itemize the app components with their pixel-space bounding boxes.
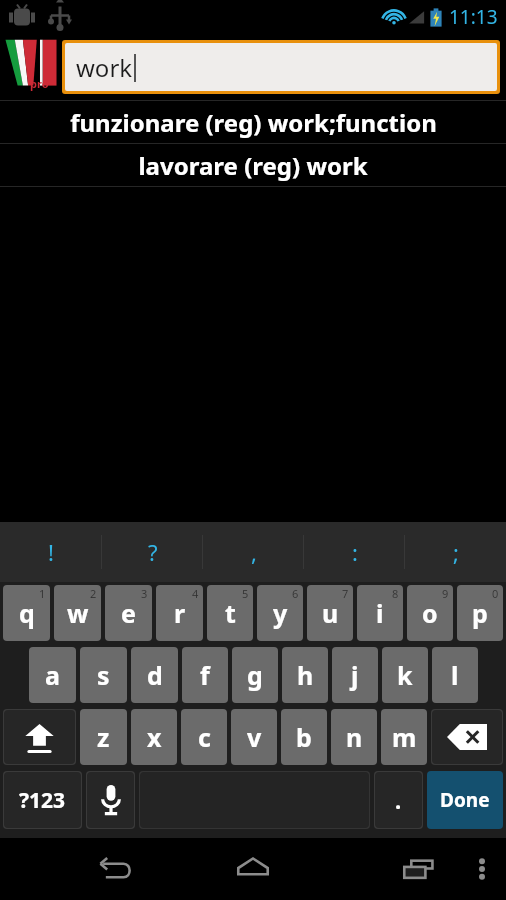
staticText: w bbox=[67, 596, 89, 630]
button[interactable]: ? bbox=[102, 522, 203, 582]
button[interactable]: e bbox=[105, 585, 152, 641]
staticText: e bbox=[121, 596, 136, 630]
staticText: g bbox=[247, 658, 263, 692]
button[interactable]: : bbox=[304, 522, 405, 582]
button[interactable]: App icon bbox=[0, 33, 62, 100]
button[interactable]: q bbox=[3, 585, 50, 641]
button[interactable]: , bbox=[203, 522, 304, 582]
button[interactable]: c bbox=[181, 709, 227, 765]
button[interactable]: . bbox=[375, 772, 422, 828]
staticText: p bbox=[472, 596, 488, 630]
staticText: ? bbox=[148, 537, 158, 567]
staticText: 8 bbox=[392, 586, 399, 601]
button[interactable]: x bbox=[131, 709, 177, 765]
button[interactable]: o bbox=[407, 585, 453, 641]
staticText: pro bbox=[30, 76, 49, 91]
staticText: o bbox=[422, 596, 438, 630]
staticText: f bbox=[200, 658, 210, 692]
staticText: s bbox=[97, 658, 110, 692]
button[interactable]: Recent apps bbox=[390, 840, 448, 898]
staticText: 0 bbox=[492, 586, 499, 601]
button[interactable]: h bbox=[282, 647, 328, 703]
staticText: h bbox=[297, 658, 314, 692]
staticText: Done bbox=[440, 787, 490, 813]
staticText: ! bbox=[48, 537, 54, 567]
staticText: ; bbox=[453, 537, 459, 567]
staticText: : bbox=[352, 537, 358, 567]
staticText: 6 bbox=[292, 586, 299, 601]
button[interactable]: u bbox=[307, 585, 353, 641]
staticText: d bbox=[147, 658, 163, 692]
staticText: 3 bbox=[141, 586, 148, 601]
button[interactable]: d bbox=[131, 647, 178, 703]
staticText: 4 bbox=[192, 586, 199, 601]
staticText: z bbox=[97, 720, 110, 754]
button[interactable]: ! bbox=[0, 522, 102, 582]
button[interactable]: w bbox=[54, 585, 101, 641]
button[interactable]: funzionare (reg) work;function bbox=[0, 101, 506, 143]
staticText: q bbox=[19, 596, 35, 630]
button[interactable]: p bbox=[457, 585, 503, 641]
button[interactable]: f bbox=[182, 647, 228, 703]
staticText: , bbox=[251, 537, 257, 567]
button[interactable]: Home bbox=[224, 840, 282, 898]
staticText: 7 bbox=[342, 586, 349, 601]
staticText: m bbox=[392, 720, 417, 754]
staticText: r bbox=[174, 596, 186, 630]
staticText: 2 bbox=[90, 586, 97, 601]
staticText: 9 bbox=[442, 586, 449, 601]
button[interactable]: n bbox=[331, 709, 377, 765]
staticText: lavorare (reg) work bbox=[138, 149, 368, 182]
staticText: . bbox=[395, 785, 402, 815]
button[interactable]: ; bbox=[405, 522, 506, 582]
staticText: 5 bbox=[242, 586, 249, 601]
button[interactable]: t bbox=[207, 585, 253, 641]
button[interactable]: y bbox=[257, 585, 303, 641]
button[interactable]: s bbox=[80, 647, 127, 703]
staticText: i bbox=[376, 596, 384, 630]
staticText: n bbox=[346, 720, 363, 754]
staticText: ?123 bbox=[19, 786, 66, 815]
staticText: u bbox=[322, 596, 339, 630]
staticText: x bbox=[147, 720, 162, 754]
button[interactable]: m bbox=[381, 709, 427, 765]
button[interactable]: b bbox=[281, 709, 327, 765]
staticText: a bbox=[45, 658, 60, 692]
button[interactable]: work bbox=[65, 43, 497, 91]
staticText: y bbox=[273, 596, 288, 630]
button[interactable]: lavorare (reg) work bbox=[0, 144, 506, 186]
button[interactable]: r bbox=[156, 585, 203, 641]
button[interactable]: j bbox=[332, 647, 378, 703]
staticText: work bbox=[76, 51, 133, 84]
button[interactable]: i bbox=[357, 585, 403, 641]
button[interactable]: Back bbox=[85, 840, 143, 898]
button[interactable]: ?123 bbox=[4, 772, 81, 828]
staticText: t bbox=[225, 596, 236, 630]
staticText: 11:13 bbox=[449, 4, 498, 30]
button[interactable]: k bbox=[382, 647, 428, 703]
staticText: v bbox=[247, 720, 262, 754]
staticText: funzionare (reg) work;function bbox=[70, 106, 437, 139]
button[interactable]: l bbox=[432, 647, 478, 703]
button[interactable]: z bbox=[80, 709, 127, 765]
button[interactable]: More options bbox=[460, 847, 504, 891]
staticText: b bbox=[296, 720, 312, 754]
staticText: l bbox=[451, 658, 459, 692]
button[interactable]: Done bbox=[427, 771, 503, 829]
staticText: 1 bbox=[39, 586, 46, 601]
button[interactable]: v bbox=[231, 709, 277, 765]
staticText: c bbox=[198, 720, 211, 754]
button[interactable]: Backspace bbox=[432, 710, 502, 764]
button[interactable]: a bbox=[29, 647, 76, 703]
button[interactable]: g bbox=[232, 647, 278, 703]
staticText: j bbox=[351, 658, 359, 692]
button[interactable]: Voice input bbox=[87, 772, 134, 828]
button[interactable]: Shift bbox=[4, 710, 75, 764]
staticText: k bbox=[397, 658, 413, 692]
